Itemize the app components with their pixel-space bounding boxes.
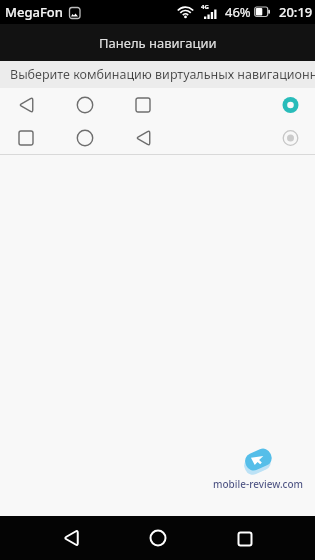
button[interactable] <box>51 518 91 558</box>
staticText: mobile-review.com <box>213 477 304 491</box>
staticText: Выберите комбинацию виртуальных навигаци… <box>10 66 315 83</box>
staticText: 20:19 <box>279 3 313 21</box>
button[interactable] <box>225 518 265 558</box>
button[interactable] <box>138 518 178 558</box>
staticText: MegaFon <box>5 3 63 21</box>
button[interactable] <box>0 88 315 122</box>
staticText: 4G <box>201 3 209 11</box>
staticText: Панель навигации <box>99 34 217 52</box>
button[interactable] <box>0 122 315 154</box>
staticText: 46% <box>225 3 251 21</box>
